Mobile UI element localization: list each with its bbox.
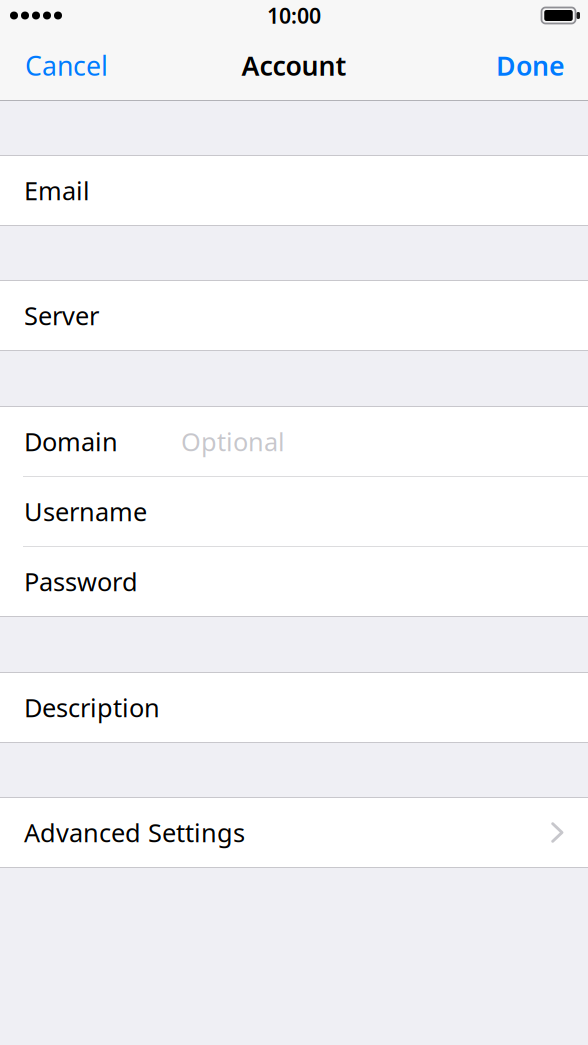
button[interactable]: Password <box>0 547 588 616</box>
staticText: Account <box>241 48 346 83</box>
staticText: Domain <box>24 425 118 458</box>
staticText: Done <box>496 48 565 83</box>
staticText: Username <box>24 495 147 528</box>
button[interactable]: Advanced Settings <box>0 798 588 867</box>
staticText: Optional <box>181 425 285 458</box>
button[interactable]: Email <box>0 156 588 225</box>
staticText: Password <box>24 565 138 598</box>
staticText: Advanced Settings <box>24 816 245 849</box>
button[interactable]: Cancel <box>0 31 122 100</box>
button[interactable]: Description <box>0 673 588 742</box>
button[interactable]: Server <box>0 281 588 350</box>
staticText: Server <box>24 299 99 332</box>
staticText: Description <box>24 691 160 724</box>
button[interactable]: Username <box>0 477 588 546</box>
staticText: Email <box>24 174 90 207</box>
staticText: Cancel <box>25 48 108 83</box>
staticText: 10:00 <box>267 1 321 30</box>
button[interactable]: Done <box>482 31 588 100</box>
button[interactable]: Domain <box>0 407 588 476</box>
